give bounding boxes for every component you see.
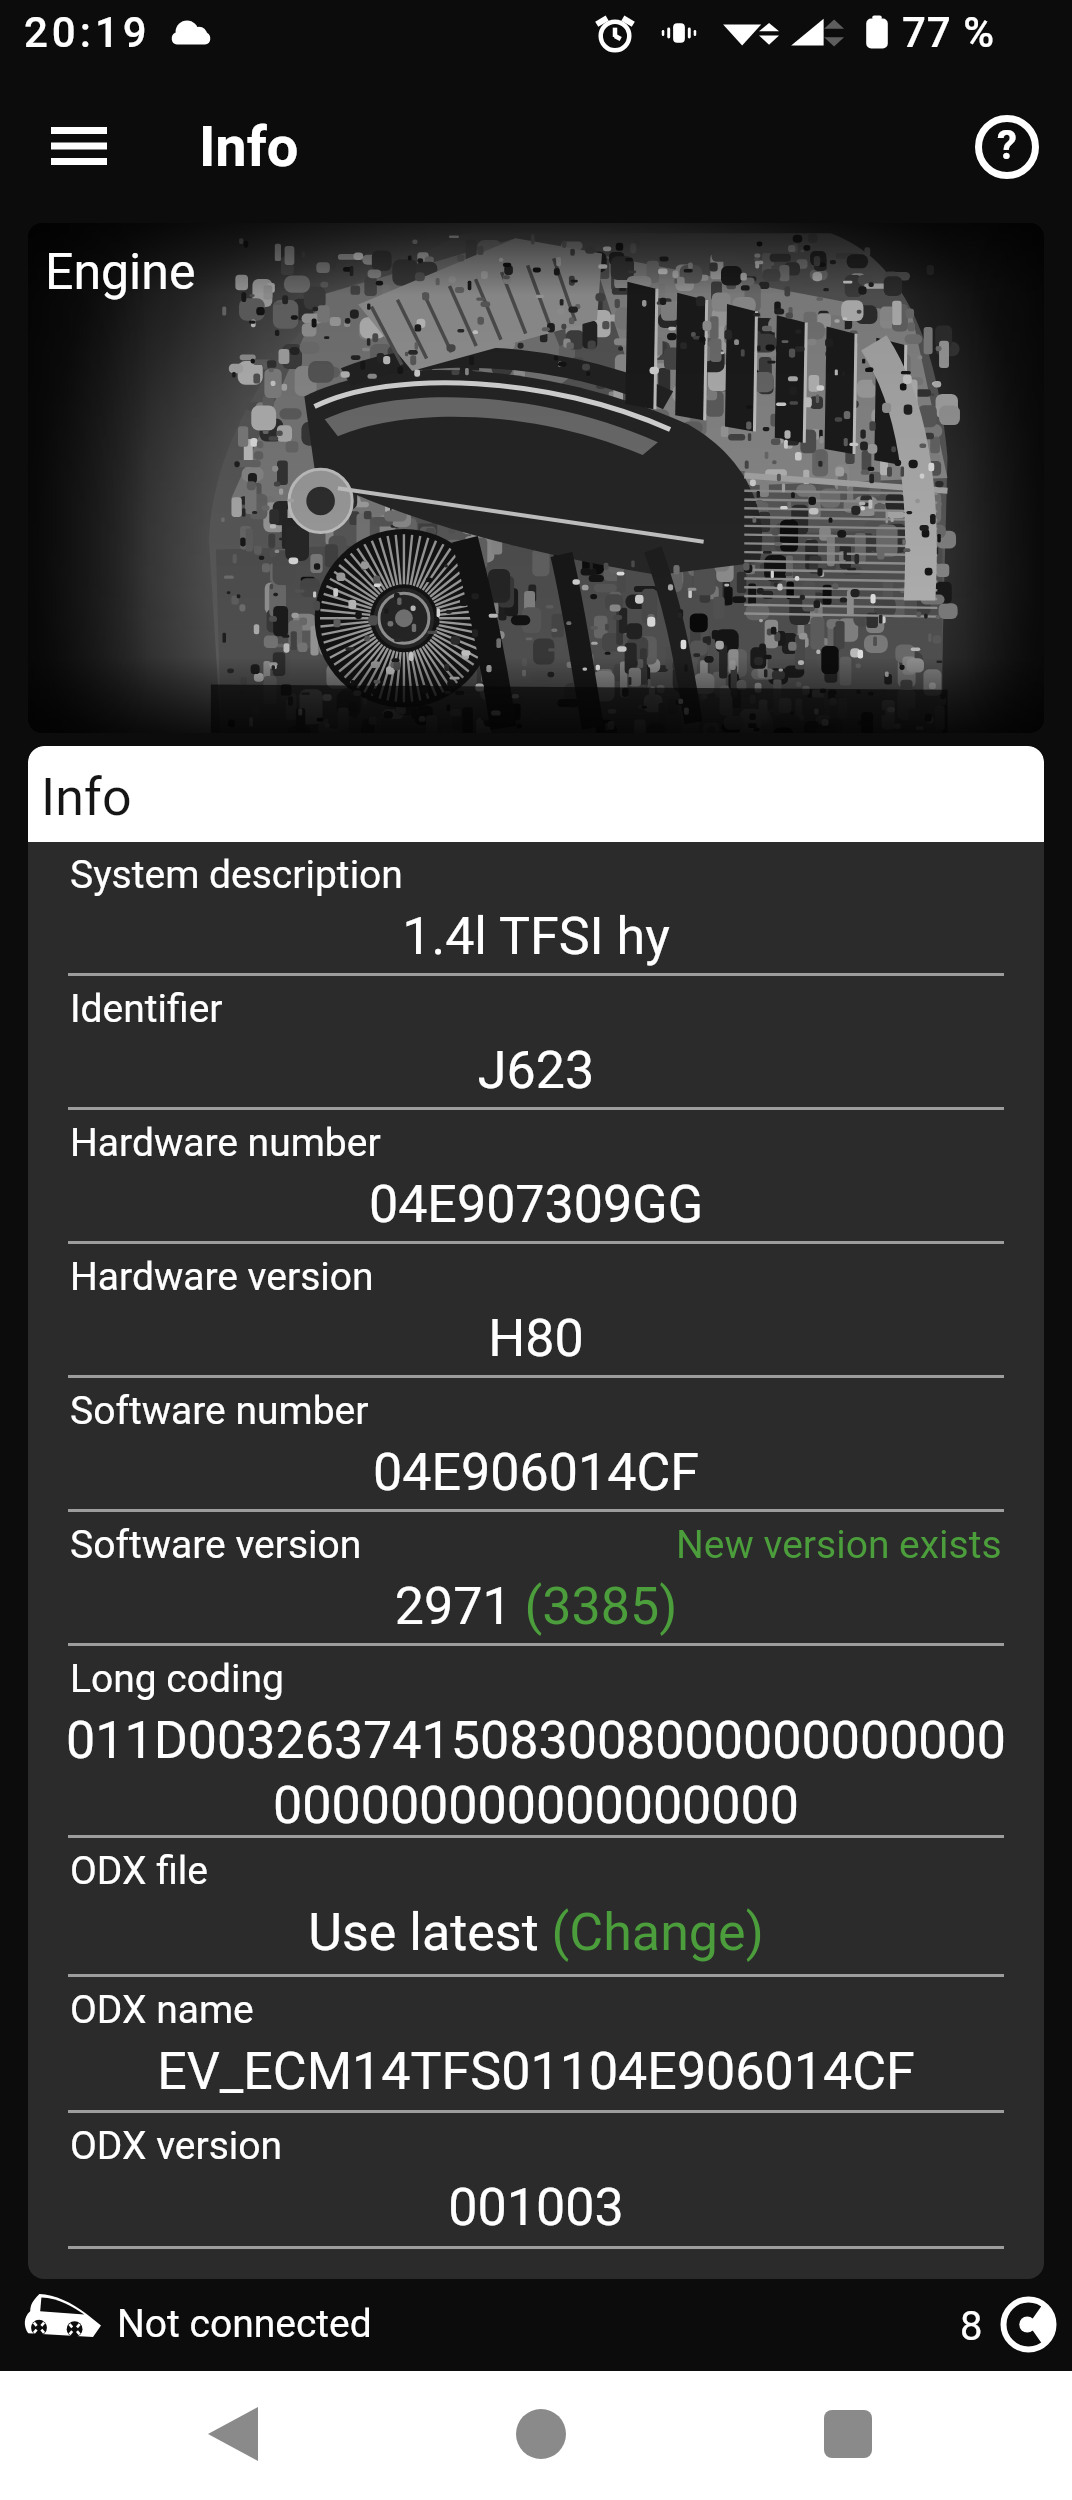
button[interactable]: Software version xyxy=(28,1512,1044,1646)
staticText: Info xyxy=(41,767,132,828)
staticText: 011D003263741508300800000000000000000000… xyxy=(62,1710,1010,1835)
staticText: 04E907309GG xyxy=(62,1174,1010,1235)
staticText: H80 xyxy=(62,1308,1010,1369)
button[interactable]: Recent apps xyxy=(804,2390,892,2478)
staticText: Hardware version xyxy=(70,1254,374,1300)
staticText: New version exists xyxy=(676,1522,1002,1568)
button[interactable]: Open navigation menu xyxy=(35,103,123,191)
staticText: ODX version xyxy=(70,2123,283,2169)
staticText: Hardware number xyxy=(70,1120,381,1166)
staticText: Long coding xyxy=(70,1656,284,1702)
staticText: EV_ECM14TFS01104E906014CF xyxy=(62,2041,1010,2102)
staticText: ? xyxy=(997,122,1017,169)
staticText: 1.4l TFSI hy xyxy=(62,906,1010,967)
button[interactable]: ODX file xyxy=(28,1838,1044,1977)
staticText: 001003 xyxy=(62,2177,1010,2238)
staticText: ODX name xyxy=(70,1987,254,2033)
staticText: 20:19 xyxy=(24,8,151,57)
button[interactable]: Connection status: Not connected xyxy=(8,2279,428,2371)
button[interactable]: Long coding xyxy=(28,1646,1044,1838)
button[interactable]: Info xyxy=(28,746,1044,842)
button[interactable]: Help xyxy=(964,104,1050,190)
button[interactable]: Identifier xyxy=(28,976,1044,1110)
button[interactable]: ODX version xyxy=(28,2113,1044,2249)
staticText: Engine xyxy=(45,243,196,302)
staticText: 04E906014CF xyxy=(62,1442,1010,1503)
staticText: Use latest (Change) xyxy=(62,1902,1010,1963)
staticText: Not connected xyxy=(117,2301,372,2347)
button[interactable]: Hardware number xyxy=(28,1110,1044,1244)
staticText: Software version xyxy=(70,1522,362,1568)
button[interactable]: Back xyxy=(189,2390,277,2478)
button[interactable]: Hardware version xyxy=(28,1244,1044,1378)
button[interactable]: Engine xyxy=(28,223,1044,733)
staticText: 8 xyxy=(960,2303,983,2350)
staticText: ODX file xyxy=(70,1848,208,1894)
button[interactable]: System description xyxy=(28,842,1044,976)
staticText: 2971 (3385) xyxy=(62,1576,1010,1637)
button[interactable]: Software number xyxy=(28,1378,1044,1512)
staticText: System description xyxy=(70,852,403,898)
staticText: Identifier xyxy=(70,986,223,1032)
staticText: Info xyxy=(199,114,299,180)
staticText: 77 % xyxy=(902,8,996,57)
button[interactable]: Home xyxy=(497,2390,585,2478)
staticText: Software number xyxy=(70,1388,369,1434)
button[interactable]: ODX name xyxy=(28,1977,1044,2113)
button[interactable]: Adapter status xyxy=(1000,2296,1057,2353)
staticText: J623 xyxy=(62,1040,1010,1101)
